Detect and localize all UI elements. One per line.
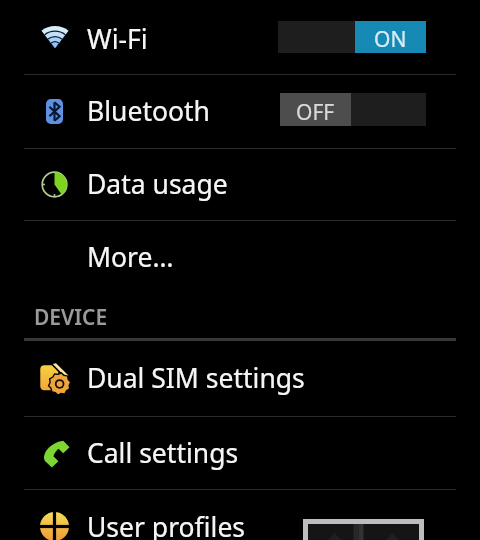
staticText: ON [374,25,407,54]
staticText: OFF [296,98,335,127]
staticText: User profiles [87,509,246,540]
staticText: Dual SIM settings [87,360,305,396]
staticText: Wi-Fi [87,21,148,57]
staticText: Bluetooth [87,93,210,129]
button[interactable]: Wi-Fi switch, on [278,21,426,53]
button[interactable]: Dual SIM settings [0,341,480,415]
staticText: DEVICE [34,303,108,332]
staticText: Call settings [87,435,239,471]
button[interactable]: Bluetooth [0,75,480,147]
button[interactable]: Call settings [0,417,480,488]
button[interactable]: User profiles [0,490,480,540]
staticText: Data usage [87,166,228,202]
button[interactable]: More… [0,221,480,293]
button[interactable]: Data usage [0,149,480,219]
staticText: More… [87,239,174,275]
button[interactable]: Bluetooth switch, off [280,93,426,126]
button[interactable]: User profiles switch [303,519,424,540]
button[interactable]: Wi-Fi [0,2,480,75]
